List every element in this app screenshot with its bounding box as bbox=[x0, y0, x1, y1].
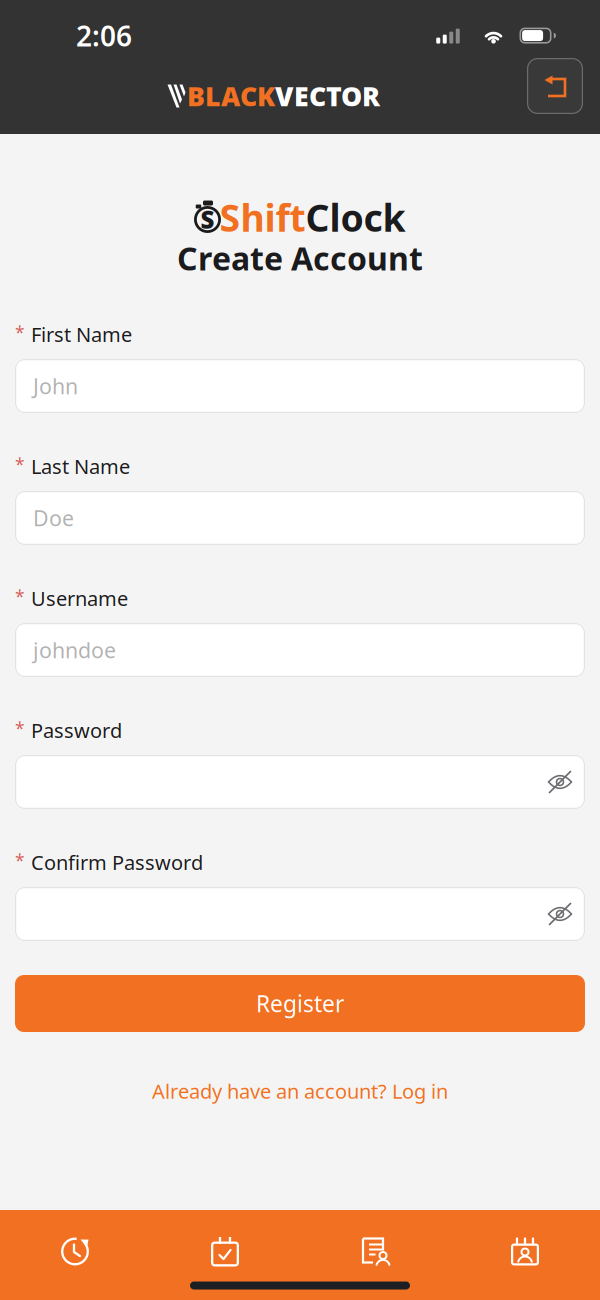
staticText: 2:06 bbox=[76, 17, 132, 54]
button[interactable]: Back bbox=[527, 58, 583, 114]
button[interactable]: Register bbox=[0, 975, 600, 1032]
button[interactable]: Already have an account? Log in bbox=[152, 1076, 448, 1106]
staticText: John bbox=[33, 372, 78, 400]
staticText: Last Name bbox=[31, 453, 130, 480]
button[interactable]: Timesheets bbox=[300, 1221, 450, 1281]
staticText: Create Account bbox=[177, 237, 423, 279]
staticText: VECTOR bbox=[275, 78, 380, 114]
staticText: First Name bbox=[31, 321, 132, 348]
staticText: Already have an account? Log in bbox=[152, 1078, 448, 1104]
staticText: Clock bbox=[305, 192, 405, 242]
button[interactable]: Schedule bbox=[150, 1221, 300, 1281]
staticText: * bbox=[15, 321, 25, 344]
button[interactable]: Time clock bbox=[0, 1221, 150, 1281]
button[interactable]: Show password bbox=[542, 757, 578, 807]
staticText: Password bbox=[31, 717, 122, 744]
staticText: Confirm Password bbox=[31, 849, 203, 876]
staticText: * bbox=[15, 585, 25, 608]
staticText: Doe bbox=[33, 504, 74, 532]
staticText: johndoe bbox=[33, 636, 116, 664]
staticText: Register bbox=[256, 988, 344, 1018]
staticText: Username bbox=[31, 585, 128, 612]
staticText: * bbox=[15, 849, 25, 872]
staticText: * bbox=[15, 717, 25, 740]
staticText: BLACK bbox=[187, 78, 275, 114]
staticText: S bbox=[200, 204, 214, 235]
button[interactable]: Staff bbox=[450, 1221, 600, 1281]
button[interactable]: Show password bbox=[542, 889, 578, 939]
staticText: Shift bbox=[219, 192, 305, 242]
staticText: * bbox=[15, 453, 25, 476]
